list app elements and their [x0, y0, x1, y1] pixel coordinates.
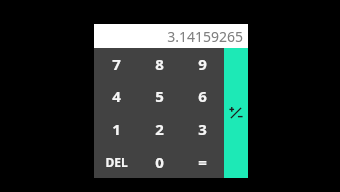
- staticText: 3: [198, 119, 207, 139]
- staticText: 3.14159265: [167, 27, 243, 46]
- staticText: 0: [155, 152, 164, 172]
- staticText: 6: [198, 86, 207, 106]
- button[interactable]: 7: [94, 48, 138, 80]
- staticText: 9: [198, 54, 207, 74]
- button[interactable]: 6: [181, 80, 224, 112]
- staticText: 7: [112, 54, 121, 74]
- button[interactable]: =: [181, 145, 224, 178]
- staticText: 4: [112, 86, 121, 106]
- button[interactable]: DEL: [94, 145, 138, 178]
- button[interactable]: 8: [138, 48, 181, 80]
- button[interactable]: 5: [138, 80, 181, 112]
- staticText: 1: [112, 119, 121, 139]
- button[interactable]: Toggle sign plus minus: [224, 48, 248, 178]
- staticText: 5: [155, 86, 164, 106]
- staticText: =: [198, 152, 207, 172]
- button[interactable]: 0: [138, 145, 181, 178]
- button[interactable]: 4: [94, 80, 138, 112]
- button[interactable]: 9: [181, 48, 224, 80]
- button[interactable]: 3: [181, 112, 224, 145]
- button[interactable]: 3.14159265: [94, 24, 248, 48]
- staticText: 2: [155, 119, 164, 139]
- button[interactable]: 1: [94, 112, 138, 145]
- button[interactable]: 2: [138, 112, 181, 145]
- staticText: DEL: [105, 154, 128, 170]
- staticText: 8: [155, 54, 164, 74]
